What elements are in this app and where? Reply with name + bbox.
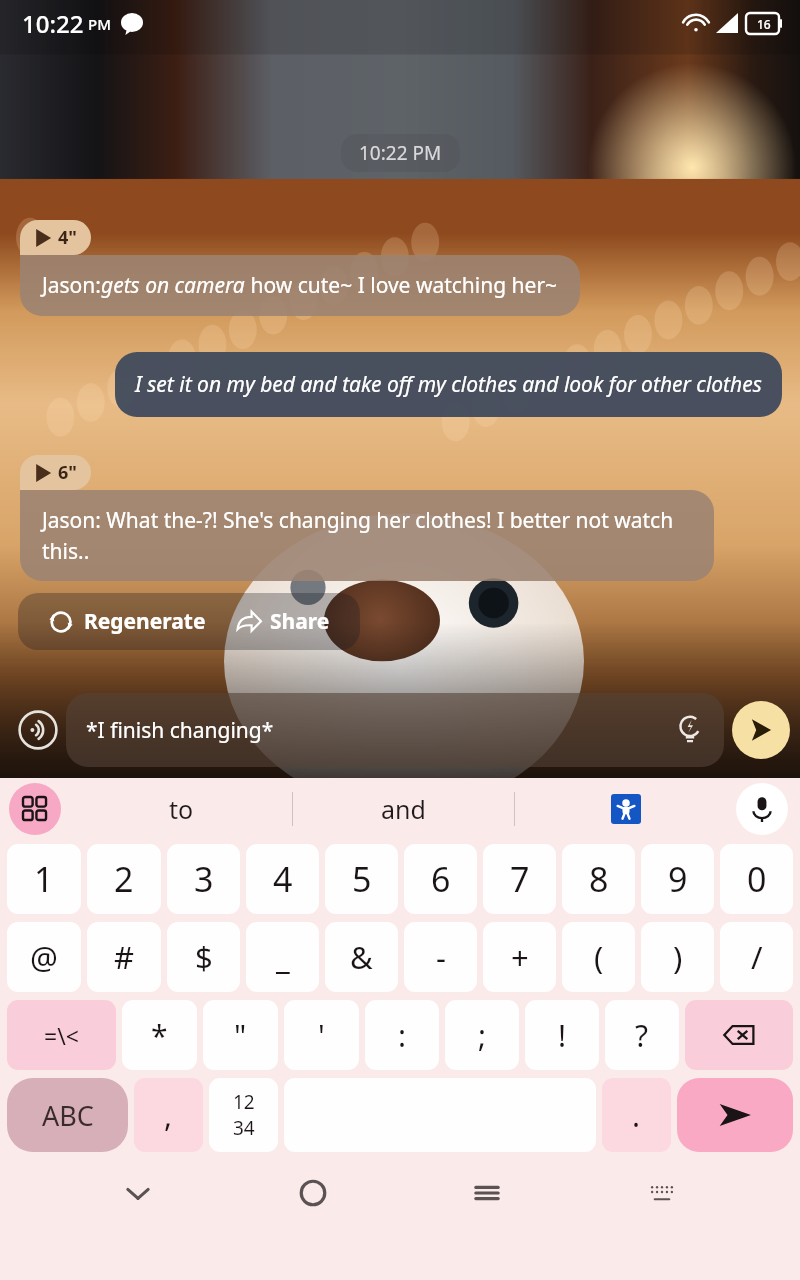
button[interactable]: 2 bbox=[87, 844, 161, 914]
button[interactable]: 7 bbox=[483, 844, 556, 914]
button[interactable]: Send bbox=[732, 701, 790, 759]
button[interactable]: and bbox=[293, 778, 514, 840]
button[interactable]: 6" bbox=[20, 455, 91, 490]
staticText: Jason: What the-?! She's changing her cl… bbox=[42, 506, 692, 565]
button[interactable]: , bbox=[134, 1078, 203, 1152]
staticText: gets on camera bbox=[101, 271, 245, 300]
button[interactable]: ) bbox=[641, 922, 714, 992]
button[interactable]: & bbox=[325, 922, 398, 992]
button[interactable]: 3 bbox=[167, 844, 240, 914]
button[interactable]: $ bbox=[167, 922, 240, 992]
button[interactable]: Hide keyboard bbox=[102, 1157, 174, 1229]
button[interactable]: Voice bbox=[10, 702, 66, 758]
button[interactable]: Menu bbox=[9, 783, 61, 835]
staticText: Share bbox=[270, 607, 330, 636]
staticText: 5 bbox=[352, 856, 372, 902]
staticText: and bbox=[381, 792, 426, 826]
button[interactable]: Recents bbox=[451, 1157, 523, 1229]
button[interactable]: 8 bbox=[562, 844, 635, 914]
staticText: , bbox=[164, 1095, 173, 1136]
button[interactable]: ; bbox=[445, 1000, 519, 1070]
staticText: 16 bbox=[757, 16, 771, 32]
staticText: 2 bbox=[114, 856, 134, 902]
button[interactable]: 6 bbox=[404, 844, 477, 914]
button[interactable]: / bbox=[720, 922, 793, 992]
staticText: 10:22 PM bbox=[359, 140, 442, 166]
staticText: =\< bbox=[44, 1020, 79, 1051]
button[interactable]: to bbox=[70, 778, 292, 840]
staticText: Jason: bbox=[42, 271, 101, 300]
staticText: * bbox=[151, 1015, 168, 1056]
button[interactable]: ( bbox=[562, 922, 635, 992]
button[interactable]: *I finish changing* bbox=[66, 693, 724, 767]
staticText: ; bbox=[478, 1015, 487, 1056]
button[interactable]: ' bbox=[284, 1000, 359, 1070]
button[interactable]: Voice input bbox=[736, 783, 788, 835]
staticText: *I finish changing* bbox=[86, 716, 670, 745]
staticText: # bbox=[114, 936, 135, 978]
button[interactable]: + bbox=[483, 922, 556, 992]
button[interactable]: Jason: bbox=[20, 255, 580, 316]
staticText: 8 bbox=[589, 856, 609, 902]
staticText: 12 bbox=[233, 1089, 255, 1115]
button[interactable]: Switch keyboard bbox=[626, 1157, 698, 1229]
button[interactable]: 12 bbox=[209, 1078, 278, 1152]
staticText: 34 bbox=[233, 1115, 255, 1141]
staticText: 3 bbox=[194, 856, 214, 902]
staticText: 4" bbox=[58, 225, 77, 250]
staticText: 9 bbox=[668, 856, 688, 902]
button[interactable]: ! bbox=[525, 1000, 599, 1070]
button[interactable]: 5 bbox=[325, 844, 398, 914]
staticText: to bbox=[169, 792, 194, 826]
staticText: 6" bbox=[58, 460, 77, 485]
staticText: PM bbox=[88, 14, 111, 34]
staticText: 1 bbox=[34, 856, 54, 902]
button[interactable]: 4 bbox=[246, 844, 319, 914]
staticText: & bbox=[350, 936, 373, 978]
staticText: Regenerate bbox=[84, 607, 206, 636]
button[interactable]: # bbox=[87, 922, 161, 992]
button[interactable]: Send bbox=[677, 1078, 793, 1152]
staticText: - bbox=[436, 936, 446, 978]
staticText: + bbox=[511, 936, 529, 978]
button[interactable]: : bbox=[365, 1000, 439, 1070]
button[interactable]: . bbox=[602, 1078, 671, 1152]
staticText: ) bbox=[673, 936, 683, 978]
button[interactable]: - bbox=[404, 922, 477, 992]
button[interactable]: 1 bbox=[7, 844, 81, 914]
staticText: _ bbox=[276, 936, 290, 978]
button[interactable]: 4" bbox=[20, 220, 91, 255]
button[interactable]: _ bbox=[246, 922, 319, 992]
staticText: ( bbox=[594, 936, 604, 978]
button[interactable]: 0 bbox=[720, 844, 793, 914]
button[interactable]: " bbox=[203, 1000, 278, 1070]
button[interactable]: @ bbox=[7, 922, 81, 992]
button[interactable]: Jason: What the-?! She's changing her cl… bbox=[20, 490, 714, 581]
staticText: ' bbox=[318, 1015, 325, 1056]
staticText: how cute~ I love watching her~ bbox=[245, 271, 558, 300]
button[interactable]: Regenerate bbox=[48, 607, 206, 636]
staticText: : bbox=[398, 1015, 407, 1056]
staticText: @ bbox=[30, 936, 58, 978]
staticText: 0 bbox=[747, 856, 767, 902]
button[interactable]: 9 bbox=[641, 844, 714, 914]
staticText: . bbox=[632, 1095, 641, 1136]
button[interactable]: Share bbox=[236, 607, 330, 636]
button[interactable]: Backspace bbox=[685, 1000, 793, 1070]
button[interactable]: Home bbox=[277, 1157, 349, 1229]
button[interactable] bbox=[515, 778, 736, 840]
button[interactable]: Suggestions bbox=[670, 710, 710, 750]
staticText: / bbox=[751, 936, 763, 978]
staticText: 4 bbox=[273, 856, 293, 902]
button[interactable]: ABC bbox=[7, 1078, 128, 1152]
staticText: " bbox=[234, 1015, 247, 1056]
button[interactable]: I set it on my bed and take off my cloth… bbox=[115, 352, 782, 417]
button[interactable]: ? bbox=[605, 1000, 679, 1070]
staticText: ABC bbox=[42, 1097, 94, 1134]
staticText: ! bbox=[558, 1015, 567, 1056]
button[interactable]: * bbox=[122, 1000, 197, 1070]
staticText: I set it on my bed and take off my cloth… bbox=[135, 370, 762, 399]
staticText: 7 bbox=[510, 856, 530, 902]
button[interactable]: =\< bbox=[7, 1000, 116, 1070]
